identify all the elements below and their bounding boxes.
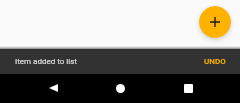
- staticText: Item added to list: [15, 57, 77, 66]
- button[interactable]: Recent apps: [176, 76, 200, 100]
- button[interactable]: UNDO: [190, 52, 240, 71]
- button[interactable]: Add: [199, 6, 231, 38]
- button[interactable]: Back: [41, 76, 65, 100]
- button[interactable]: Home: [108, 76, 132, 100]
- staticText: UNDO: [204, 57, 226, 66]
